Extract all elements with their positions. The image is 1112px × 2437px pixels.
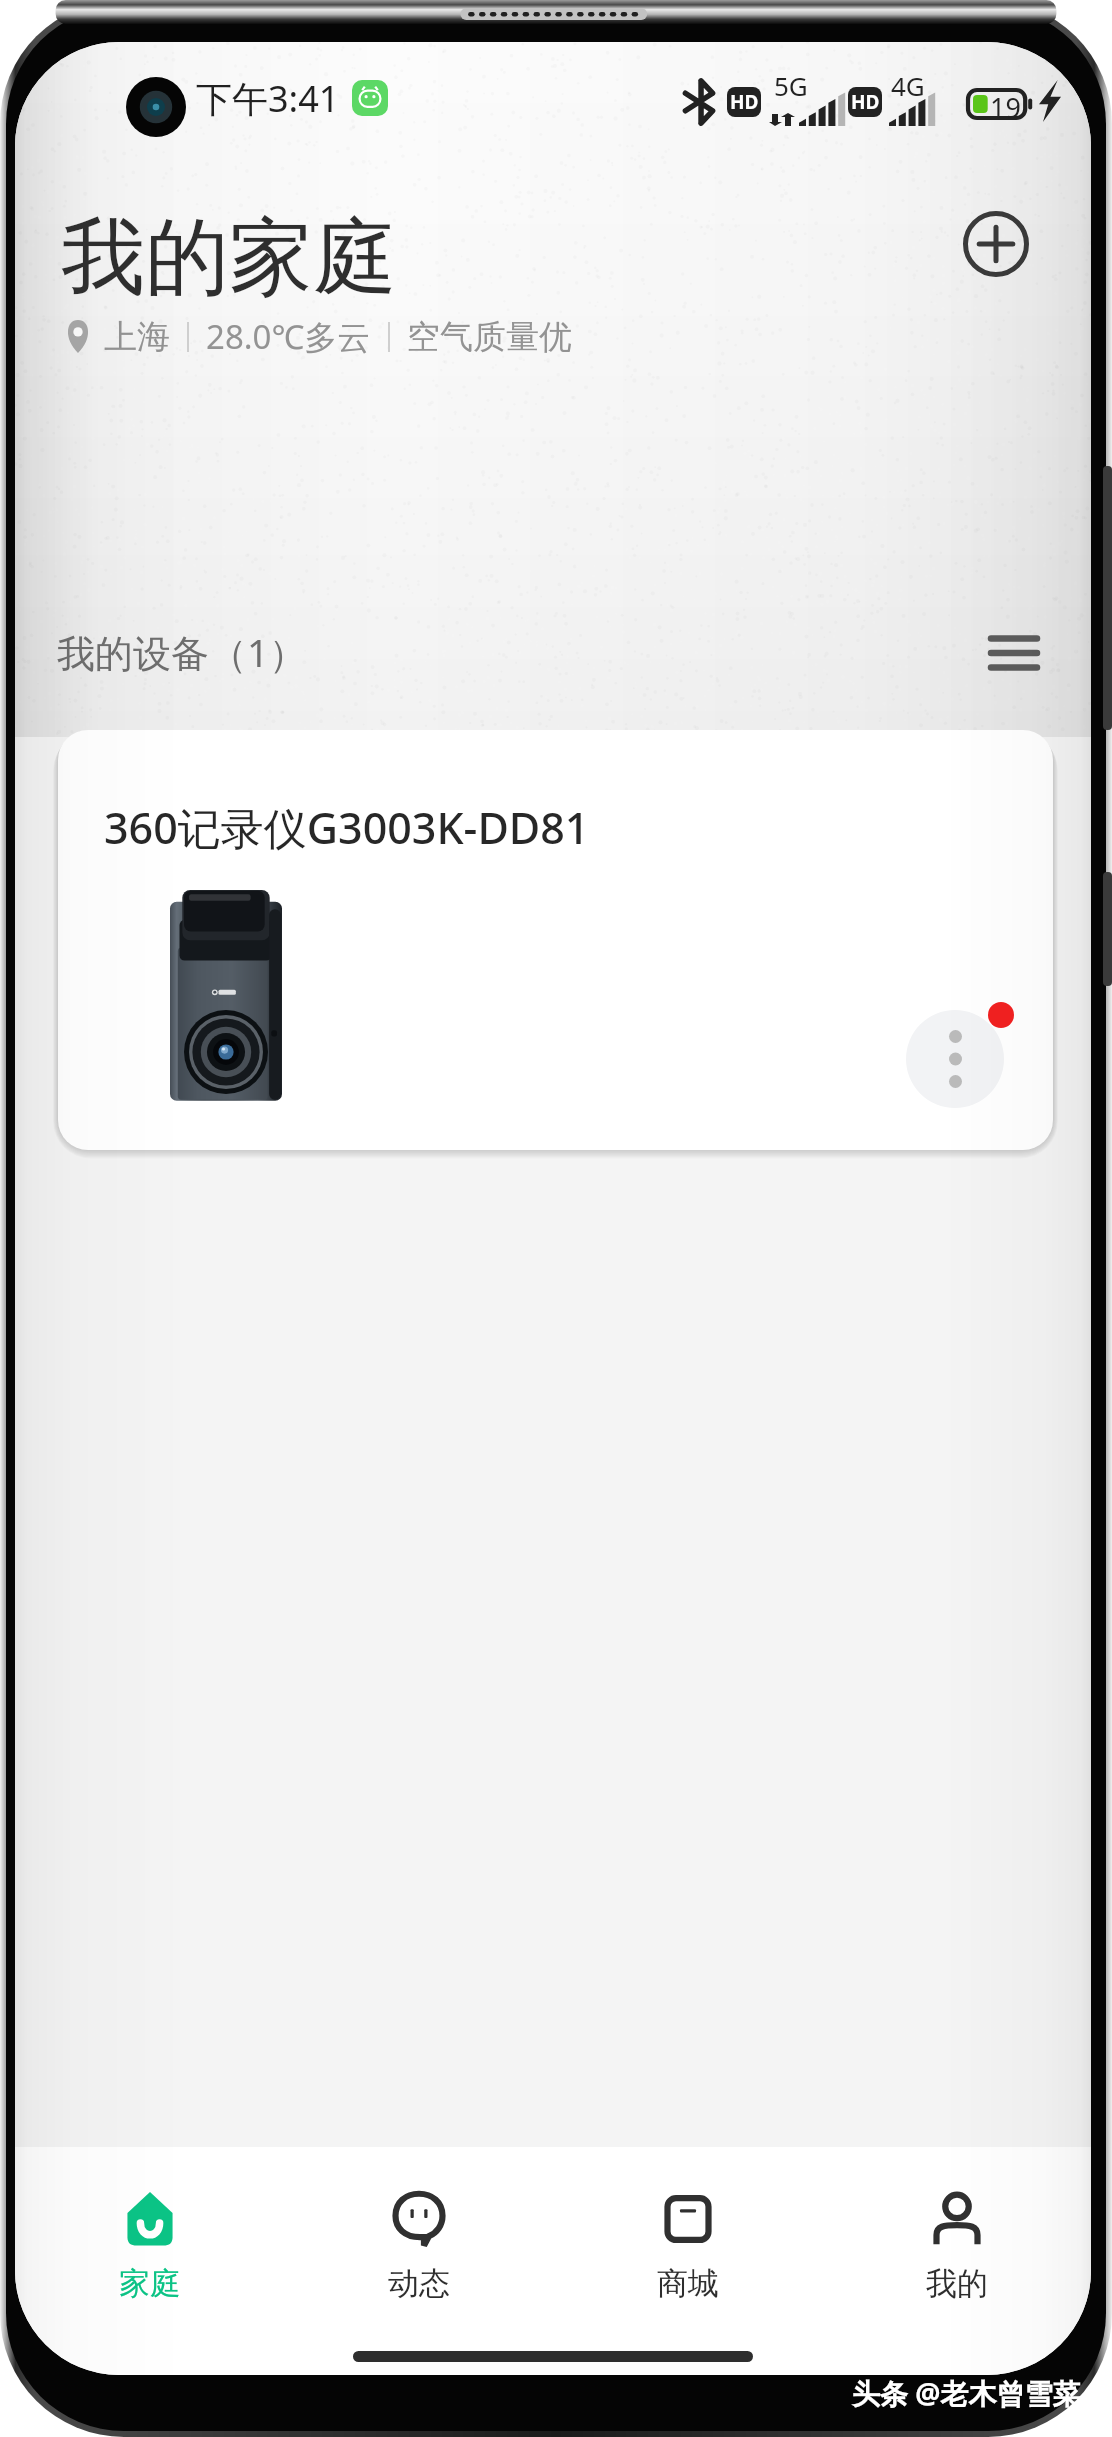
staticText: 下午3:41 <box>196 74 340 123</box>
staticText: HD <box>851 89 880 115</box>
staticText: 我的家庭 <box>61 205 397 311</box>
staticText: 4G <box>891 68 925 103</box>
button[interactable]: Add device <box>952 200 1040 288</box>
staticText: HD <box>730 89 759 115</box>
button[interactable]: 动态 <box>284 2147 553 2317</box>
staticText: 头条 @老木曾雪菜 <box>852 2374 1081 2412</box>
staticText: 家庭 <box>119 2264 181 2303</box>
staticText: 360记录仪G3003K-DD81 <box>104 798 590 857</box>
staticText: 28.0℃多云 <box>206 314 371 359</box>
button[interactable]: Device list menu <box>975 614 1053 692</box>
button[interactable]: 家庭 <box>15 2147 284 2317</box>
staticText: 我的 <box>926 2264 988 2303</box>
staticText: 5G <box>774 68 808 103</box>
button[interactable]: 商城 <box>553 2147 822 2317</box>
staticText: 商城 <box>657 2264 719 2303</box>
button[interactable]: 360记录仪G3003K-DD81 <box>58 730 1053 1150</box>
staticText: 上海 <box>104 316 170 358</box>
staticText: 动态 <box>388 2264 450 2303</box>
staticText: 19 <box>990 89 1021 121</box>
button[interactable]: 我的 <box>822 2147 1091 2317</box>
staticText: 我的设备（1） <box>57 626 307 678</box>
staticText: 空气质量优 <box>407 316 572 358</box>
button[interactable]: More options <box>906 1010 1004 1108</box>
